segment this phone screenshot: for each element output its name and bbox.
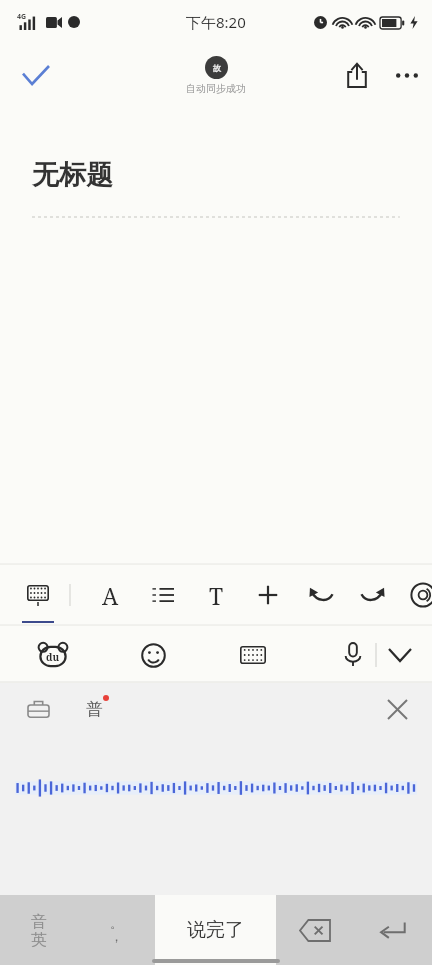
staticText: 说完了 <box>187 918 244 942</box>
button[interactable]: 百度输入法 <box>30 632 76 678</box>
button[interactable]: 键盘 <box>14 571 62 619</box>
button[interactable]: 更多 <box>382 50 432 100</box>
button[interactable]: 删除 <box>276 895 354 965</box>
button[interactable]: 工具 <box>349 571 397 619</box>
staticText: 下午8:20 <box>186 12 246 32</box>
staticText: 4G <box>17 12 27 22</box>
button[interactable]: 工具 <box>399 571 432 619</box>
button[interactable]: 说完了 <box>155 895 276 965</box>
staticText: 故 <box>213 63 221 73</box>
button[interactable]: 普 <box>74 689 114 729</box>
button[interactable]: 工具 <box>192 571 240 619</box>
staticText: 普 <box>86 699 103 720</box>
button[interactable]: 音 英 <box>0 895 77 965</box>
button[interactable]: 工具 <box>244 571 292 619</box>
button[interactable]: 分享 <box>332 50 382 100</box>
staticText: 。 ， <box>110 915 123 945</box>
button[interactable]: 工具箱 <box>20 691 56 727</box>
staticText: 音 英 <box>31 912 47 949</box>
button[interactable]: 工具 <box>86 571 134 619</box>
button[interactable]: 关闭 <box>376 688 418 730</box>
staticText: T <box>209 580 224 611</box>
staticText: 无标题 <box>32 158 113 192</box>
button[interactable]: 故 <box>186 56 246 95</box>
button[interactable]: 工具 <box>297 571 345 619</box>
button[interactable]: 完成 <box>10 49 62 101</box>
button[interactable]: 工具 <box>139 571 187 619</box>
button[interactable]: 收起 <box>377 629 422 681</box>
button[interactable]: 语音 <box>330 632 376 678</box>
button[interactable]: 表情 <box>130 632 176 678</box>
button[interactable]: 键盘 <box>230 632 276 678</box>
staticText: 自动同步成功 <box>186 82 246 95</box>
staticText: A <box>102 580 119 611</box>
staticText: du <box>46 650 60 664</box>
button[interactable]: 换行 <box>354 895 432 965</box>
button[interactable]: 。 ， <box>77 895 155 965</box>
